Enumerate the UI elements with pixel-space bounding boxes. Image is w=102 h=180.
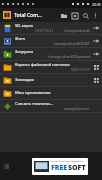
button[interactable]: Открыть: [92, 37, 100, 45]
button[interactable]: Ещё: [91, 11, 99, 19]
button[interactable]: Скачать плагины...: [0, 100, 102, 112]
staticText: Total Com...: [14, 12, 42, 19]
staticText: /storage/sdcard0/DCIM: [54, 42, 90, 46]
button[interactable]: Открыть: [92, 24, 100, 32]
staticText: Скачай бесплатно: материалы: [51, 160, 84, 163]
staticText: Фото: [15, 36, 26, 42]
staticText: 10.9 Г/13.2 Г: [35, 29, 54, 33]
staticText: Загрузки: [15, 49, 33, 55]
button[interactable]: Выбор: [69, 10, 80, 21]
staticText: Скачать плагины...: [15, 101, 54, 107]
button[interactable]: Корень файловой системы: [0, 61, 102, 73]
button[interactable]: Вид: [92, 63, 100, 71]
button[interactable]: Мои приложения: [0, 87, 102, 99]
button[interactable]: Фото: [0, 35, 102, 47]
staticText: Мои приложения: [15, 90, 51, 96]
staticText: SD-карта: [15, 23, 33, 29]
button[interactable]: Загрузки: [0, 48, 102, 60]
button[interactable]: Вид: [92, 76, 100, 84]
button[interactable]: Закладки: [0, 74, 102, 86]
button[interactable]: SD-карта: [0, 22, 102, 34]
staticText: 20:35: [92, 2, 101, 7]
staticText: Закладки: [15, 77, 35, 83]
staticText: SOFT: [68, 163, 86, 173]
staticText: /storage/sdcard0/Download: [48, 55, 90, 59]
staticText: FREE: [51, 163, 68, 173]
staticText: 14.9 Г/12.9 Г: [71, 68, 90, 72]
staticText: /storage/sdcard0: [64, 29, 90, 33]
button[interactable]: Поиск: [80, 10, 91, 21]
button[interactable]: Папка: [58, 10, 69, 21]
staticText: Корень файловой системы: [15, 62, 70, 68]
staticText: www.ghisler.com: [64, 107, 90, 111]
button[interactable]: Открыть: [92, 50, 100, 58]
button[interactable]: Меню: [3, 163, 10, 170]
